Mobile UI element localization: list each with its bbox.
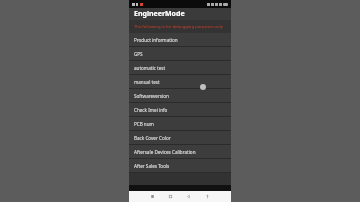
button[interactable]: Keyboard [198,191,217,202]
staticText: GPS [134,51,143,57]
button[interactable]: automatic test [129,61,231,74]
button[interactable]: After Sales Tools [129,159,231,172]
button[interactable]: Check Imei info [129,103,231,116]
staticText: Check Imei info [134,107,168,113]
staticText: After Sales Tools [134,163,170,169]
staticText: automatic test [134,65,166,71]
button[interactable]: GPS [129,47,231,60]
button[interactable]: Back Cover Color [129,131,231,144]
staticText: Aftersale Devices Calibration [134,149,196,155]
button[interactable]: manual test [129,75,231,88]
button[interactable]: Recent apps [143,191,161,202]
button[interactable]: Aftersale Devices Calibration [129,145,231,158]
staticText: PCB num [134,121,154,127]
staticText: Back Cover Color [134,135,171,141]
staticText: Softwareversion [134,93,169,99]
button[interactable]: Home [161,191,179,202]
staticText: Product information [134,37,178,43]
button[interactable]: Back [179,191,198,202]
button[interactable]: PCB num [129,117,231,130]
button[interactable]: Product information [129,33,231,46]
staticText: EngineerMode [134,9,185,19]
staticText: manual test [134,79,160,85]
staticText: The following is for debugging purposes … [134,24,223,30]
button[interactable]: Softwareversion [129,89,231,102]
